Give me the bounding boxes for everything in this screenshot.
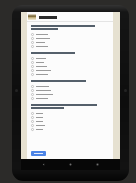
button[interactable]: [31, 115, 109, 119]
button[interactable]: [31, 64, 109, 68]
button[interactable]: [31, 44, 109, 48]
button[interactable]: Back: [39, 160, 48, 169]
button[interactable]: Home: [66, 160, 75, 169]
button[interactable]: [31, 92, 109, 96]
button[interactable]: [31, 72, 109, 76]
button[interactable]: [31, 84, 109, 88]
button[interactable]: [31, 88, 109, 92]
button[interactable]: [31, 60, 109, 64]
button[interactable]: [31, 56, 109, 60]
button[interactable]: [31, 36, 109, 40]
button[interactable]: Recent apps: [93, 160, 102, 169]
button[interactable]: [31, 151, 46, 156]
button[interactable]: [31, 119, 109, 123]
button[interactable]: App logo: [28, 14, 36, 20]
button[interactable]: [31, 68, 109, 72]
button[interactable]: [31, 111, 109, 115]
button[interactable]: [31, 40, 109, 44]
button[interactable]: [31, 96, 109, 100]
button[interactable]: [31, 123, 109, 127]
button[interactable]: [31, 127, 109, 131]
button[interactable]: [31, 32, 109, 36]
